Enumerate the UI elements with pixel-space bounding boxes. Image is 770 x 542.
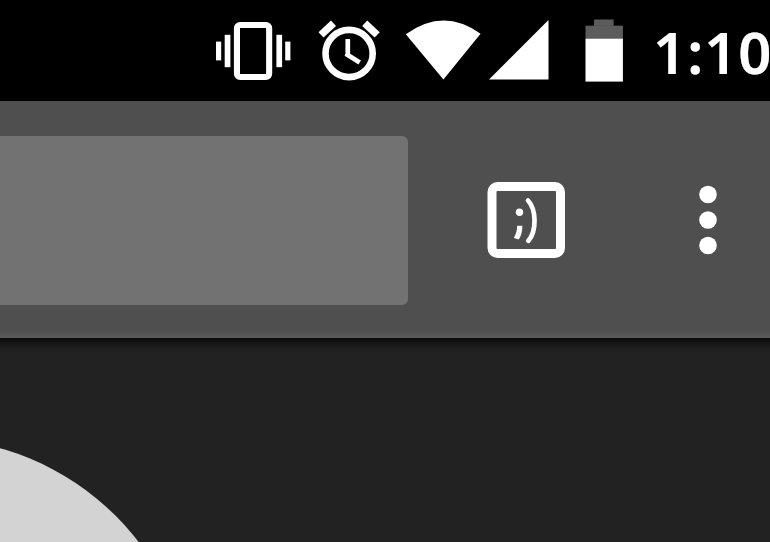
button[interactable]: Insert emoji: [470, 164, 582, 276]
staticText: 1:10: [653, 12, 770, 91]
button[interactable]: Conversation: [0, 0, 770, 542]
button[interactable]: More options: [678, 155, 738, 285]
